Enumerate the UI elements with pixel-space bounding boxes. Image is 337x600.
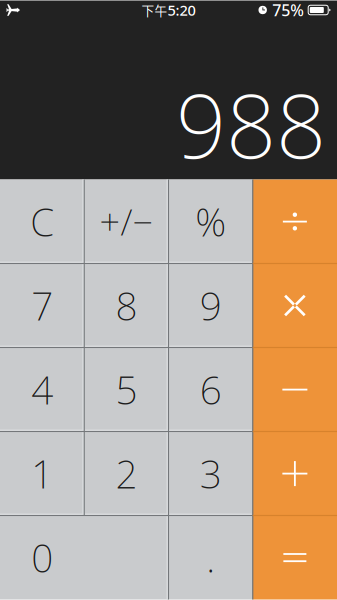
staticText: 6	[200, 364, 222, 415]
button[interactable]: 2	[84, 431, 168, 515]
staticText: 2	[115, 448, 137, 499]
staticText: 5	[115, 364, 137, 415]
button[interactable]: 4	[0, 347, 84, 431]
staticText: +/−	[99, 198, 153, 245]
button[interactable]: +/−	[84, 179, 168, 263]
button[interactable]: 5	[84, 347, 168, 431]
staticText: 1	[31, 448, 53, 499]
button[interactable]: %	[168, 179, 253, 263]
staticText: C	[30, 196, 54, 247]
button[interactable]: 0	[0, 515, 168, 599]
staticText: 9	[200, 280, 222, 331]
button[interactable]: 1	[0, 431, 84, 515]
button[interactable]: Multiply	[253, 263, 337, 347]
button[interactable]: 8	[84, 263, 168, 347]
staticText: 7	[31, 280, 53, 331]
button[interactable]: 9	[168, 263, 253, 347]
button[interactable]: 6	[168, 347, 253, 431]
staticText: 3	[200, 448, 222, 499]
staticText: %	[195, 196, 226, 247]
button[interactable]: Plus	[253, 431, 337, 515]
staticText: 988	[176, 66, 326, 182]
staticText: 下午	[141, 1, 167, 19]
staticText: 0	[31, 532, 53, 583]
staticText: 75%	[272, 0, 304, 21]
button[interactable]: C	[0, 179, 84, 263]
button[interactable]: Minus	[253, 347, 337, 431]
button[interactable]: Divide	[253, 179, 337, 263]
button[interactable]: .	[168, 515, 253, 599]
staticText: 8	[115, 280, 137, 331]
button[interactable]: 7	[0, 263, 84, 347]
staticText: 4	[31, 364, 53, 415]
button[interactable]: Equals	[253, 515, 337, 599]
staticText: 5:20	[167, 0, 195, 20]
staticText: .	[206, 532, 215, 583]
button[interactable]: 3	[168, 431, 253, 515]
